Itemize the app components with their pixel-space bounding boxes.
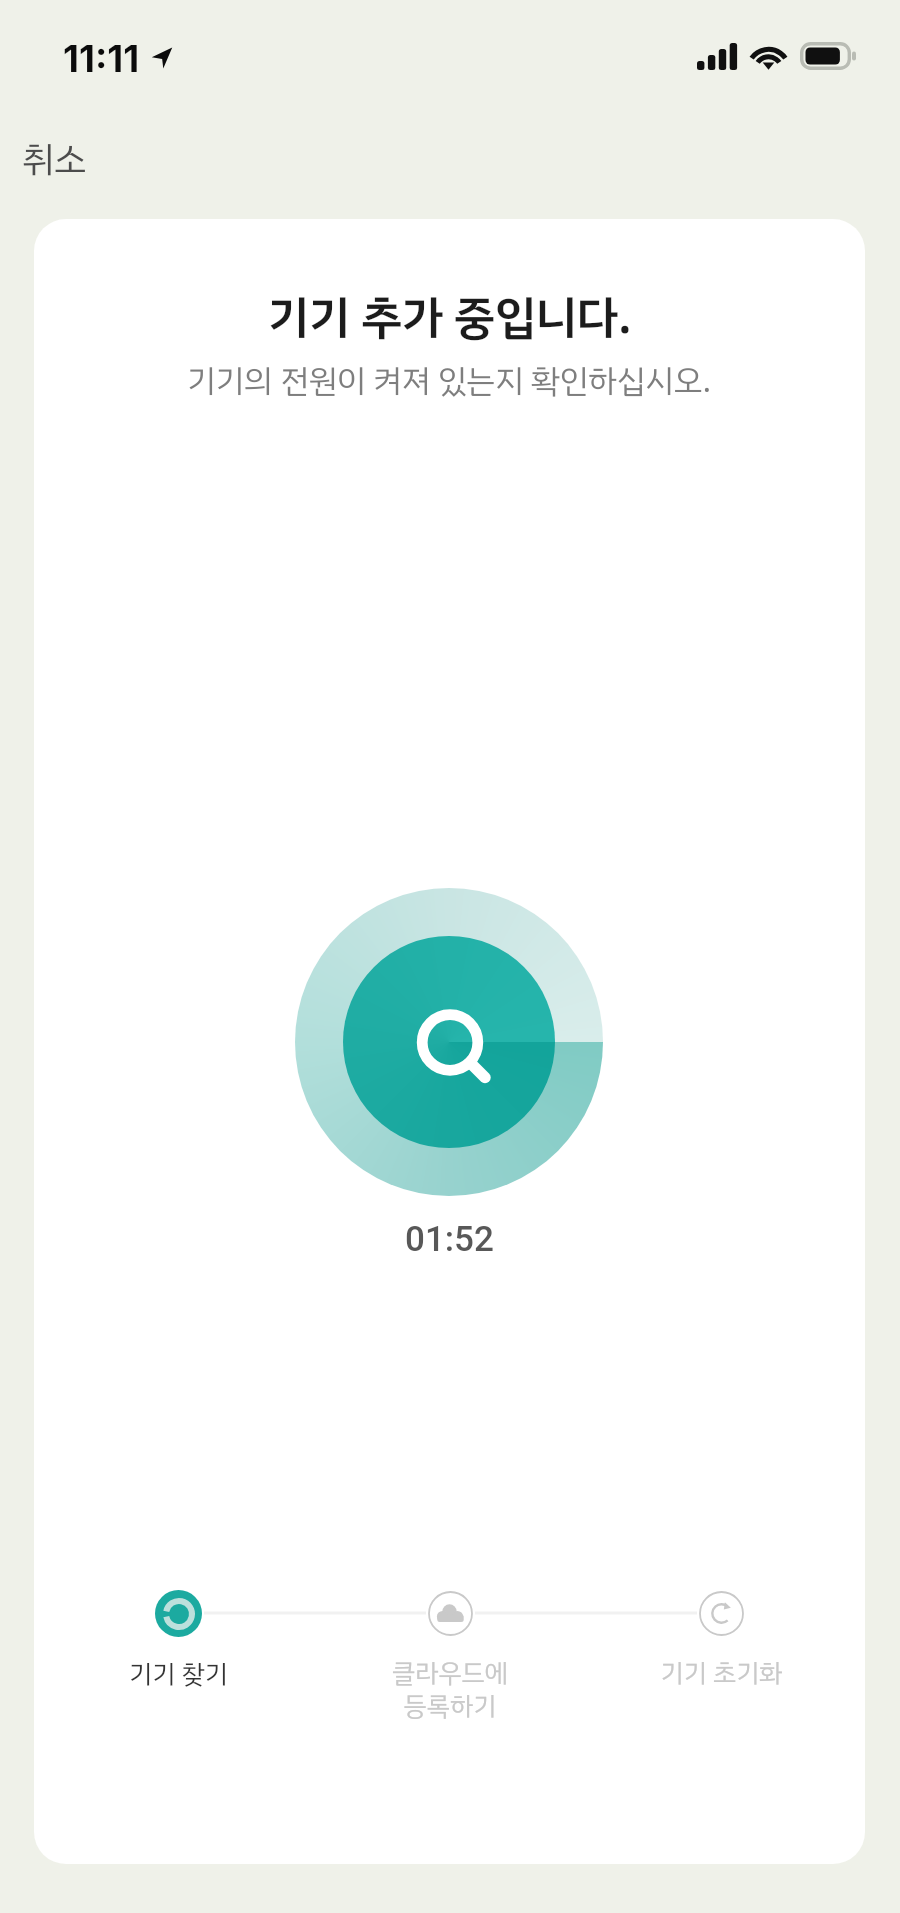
button[interactable]: 기기 초기화 [621, 1591, 821, 1693]
staticText: 01:52 [405, 1219, 494, 1260]
staticText: 기기의 전원이 켜져 있는지 확인하십시오. [187, 357, 712, 405]
other: Searching for devices [394, 987, 504, 1097]
staticText: 기기 추가 중입니다. [268, 283, 632, 352]
staticText: 11:11 [63, 36, 140, 81]
button[interactable]: 클라우드에 등록하기 [350, 1591, 550, 1726]
staticText: 취소 [22, 133, 87, 187]
button[interactable]: 기기 찾기 [78, 1590, 278, 1694]
staticText: 클라우드에 등록하기 [392, 1654, 508, 1726]
other: Location [149, 45, 177, 73]
button[interactable]: 취소 [6, 125, 103, 195]
staticText: 기기 찾기 [129, 1655, 228, 1694]
staticText: 기기 초기화 [660, 1654, 783, 1693]
